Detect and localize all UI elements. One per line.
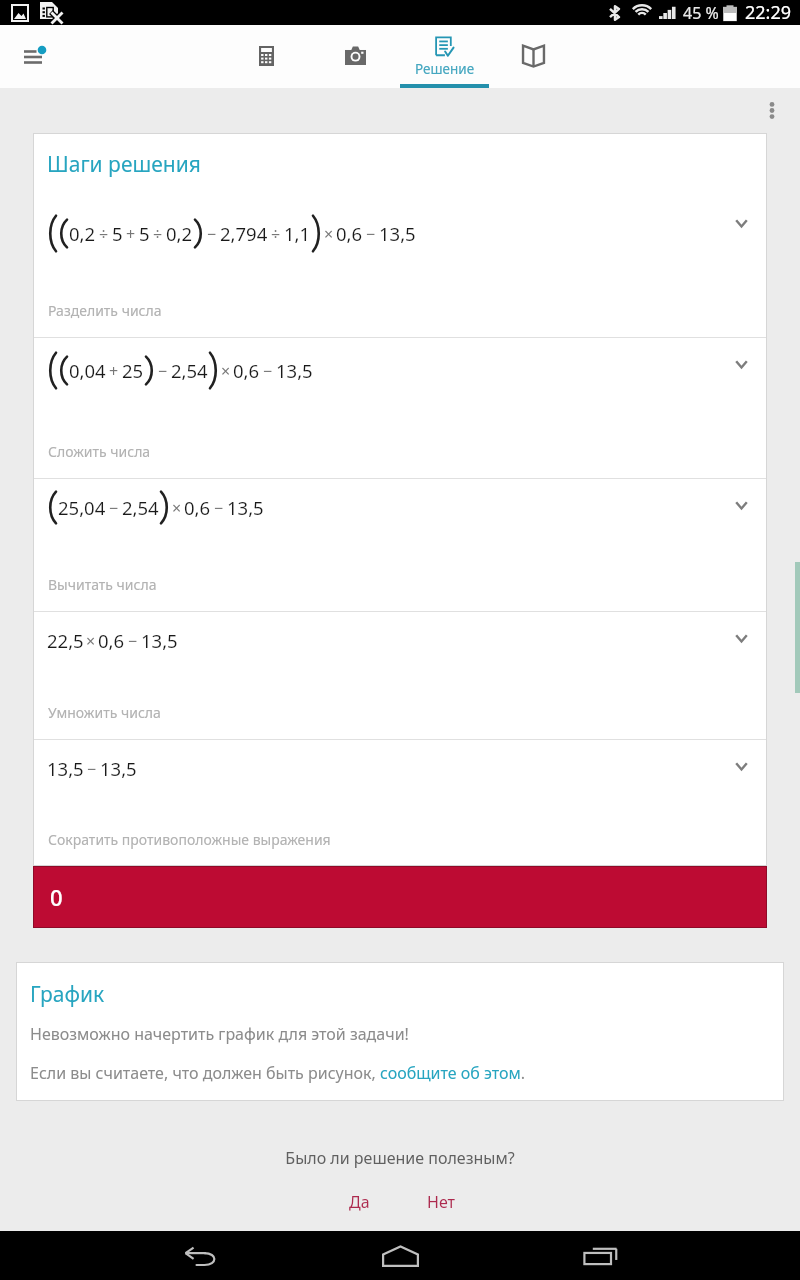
- staticText: ×: [324, 223, 334, 245]
- button[interactable]: Expand: [723, 620, 759, 656]
- staticText: Сократить противоположные выражения: [48, 830, 331, 849]
- staticText: −: [214, 497, 224, 519]
- staticText: ÷: [271, 223, 281, 245]
- staticText: ÷: [99, 223, 109, 245]
- staticText: 13,5: [141, 628, 178, 653]
- staticText: Шаги решения: [47, 150, 201, 179]
- staticText: Разделить числа: [48, 301, 162, 320]
- staticText: ×: [86, 630, 96, 652]
- staticText: 13,5: [276, 358, 313, 383]
- staticText: 0,2: [166, 221, 193, 246]
- staticText: 13,5: [227, 495, 264, 520]
- staticText: 5: [139, 221, 150, 246]
- button[interactable]: Home: [370, 1234, 430, 1278]
- staticText: 0,04: [69, 358, 106, 383]
- button[interactable]: Expand: [723, 748, 759, 784]
- button[interactable]: More options: [752, 90, 792, 130]
- staticText: Если вы считаете, что должен быть рисуно…: [30, 1062, 526, 1084]
- button[interactable]: 0,2: [33, 133, 767, 337]
- button[interactable]: Recent apps: [570, 1234, 630, 1278]
- button[interactable]: Menu: [10, 33, 60, 83]
- staticText: −: [158, 360, 168, 382]
- staticText: 0,6: [336, 221, 363, 246]
- staticText: 13,5: [47, 756, 84, 781]
- button[interactable]: 0: [33, 866, 767, 928]
- staticText: График: [30, 980, 105, 1009]
- staticText: Вычитать числа: [48, 575, 157, 594]
- staticText: −: [109, 497, 119, 519]
- button[interactable]: Нет: [405, 1186, 477, 1218]
- button[interactable]: 25,04: [33, 479, 767, 611]
- staticText: +: [109, 360, 119, 382]
- button[interactable]: Да: [327, 1186, 392, 1218]
- staticText: 25: [122, 358, 144, 383]
- staticText: ×: [172, 497, 182, 519]
- staticText: 5: [112, 221, 123, 246]
- staticText: 2,54: [122, 495, 159, 520]
- button[interactable]: Dictionary: [509, 36, 557, 76]
- staticText: 2,794: [220, 221, 268, 246]
- button[interactable]: 13,5: [33, 740, 767, 866]
- staticText: Умножить числа: [48, 703, 161, 722]
- staticText: 2,54: [171, 358, 208, 383]
- button[interactable]: Solution: [400, 25, 489, 88]
- staticText: ÷: [153, 223, 163, 245]
- button[interactable]: Expand: [723, 346, 759, 382]
- staticText: Было ли решение полезным?: [0, 1147, 800, 1169]
- staticText: Решение: [415, 60, 475, 78]
- button[interactable]: Camera: [331, 35, 379, 75]
- staticText: +: [126, 223, 136, 245]
- staticText: −: [128, 630, 138, 652]
- staticText: 45 %: [683, 2, 719, 24]
- staticText: Сложить числа: [48, 442, 151, 461]
- staticText: 1,1: [284, 221, 311, 246]
- staticText: −: [263, 360, 273, 382]
- button[interactable]: Expand: [723, 487, 759, 523]
- staticText: Невозможно начертить график для этой зад…: [30, 1023, 409, 1045]
- staticText: 25,04: [58, 495, 106, 520]
- staticText: 0,6: [184, 495, 211, 520]
- staticText: −: [207, 223, 217, 245]
- staticText: 0,2: [69, 221, 96, 246]
- staticText: 13,5: [100, 756, 137, 781]
- button[interactable]: 0,04: [33, 338, 767, 478]
- staticText: −: [87, 758, 97, 780]
- staticText: 0: [50, 882, 63, 912]
- staticText: 0,6: [233, 358, 260, 383]
- staticText: −: [366, 223, 376, 245]
- button[interactable]: Expand: [723, 205, 759, 241]
- button[interactable]: 22,5: [33, 612, 767, 739]
- staticText: Нет: [427, 1191, 455, 1213]
- staticText: 22:29: [745, 0, 792, 25]
- staticText: 0,6: [98, 628, 125, 653]
- button[interactable]: Back: [170, 1234, 230, 1278]
- staticText: 22,5: [47, 628, 84, 653]
- button[interactable]: Calculator: [242, 36, 290, 76]
- staticText: Да: [349, 1191, 370, 1213]
- staticText: ×: [221, 360, 231, 382]
- staticText: 13,5: [379, 221, 416, 246]
